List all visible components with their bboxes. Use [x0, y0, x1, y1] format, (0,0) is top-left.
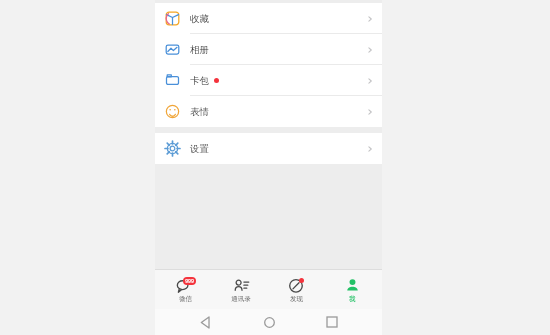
- staticText: 相册: [190, 44, 209, 56]
- staticText: 我: [349, 295, 356, 303]
- staticText: 发现: [290, 295, 303, 303]
- button[interactable]: 我: [326, 270, 378, 309]
- staticText: 设置: [190, 143, 209, 155]
- button[interactable]: 设置: [155, 133, 382, 164]
- button[interactable]: 999: [159, 270, 211, 309]
- button[interactable]: 相册: [155, 34, 382, 65]
- button[interactable]: 发现: [270, 270, 322, 309]
- staticText: 表情: [190, 106, 209, 118]
- button[interactable]: Back: [192, 309, 218, 335]
- button[interactable]: Home: [256, 309, 282, 335]
- staticText: 卡包: [190, 75, 209, 87]
- button[interactable]: 收藏: [155, 3, 382, 34]
- button[interactable]: 卡包: [155, 65, 382, 96]
- button[interactable]: 表情: [155, 96, 382, 127]
- button[interactable]: 通讯录: [215, 270, 267, 309]
- staticText: 通讯录: [231, 295, 251, 303]
- staticText: 微信: [179, 295, 192, 303]
- staticText: 999: [185, 278, 194, 285]
- button[interactable]: Recents: [319, 309, 345, 335]
- staticText: 收藏: [190, 13, 209, 25]
